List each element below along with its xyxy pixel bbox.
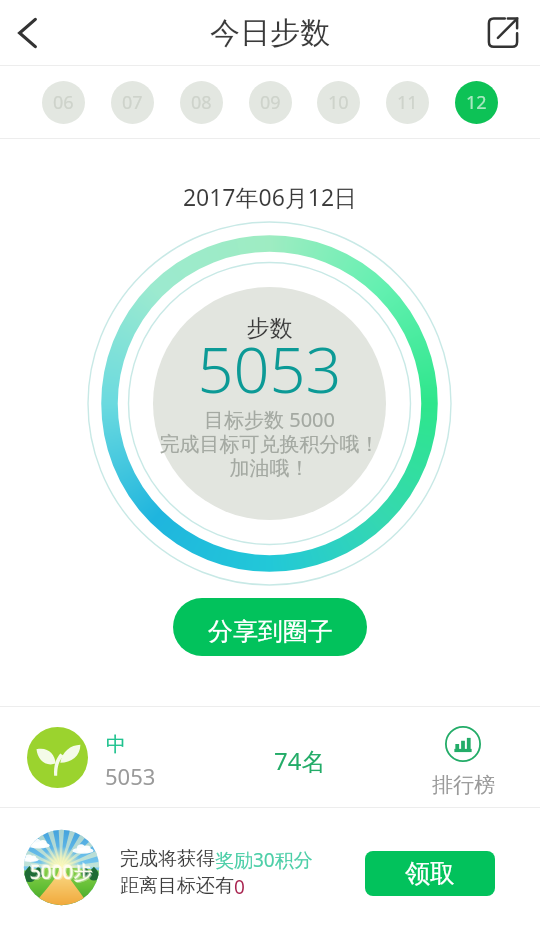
button[interactable]: 09 (249, 81, 292, 124)
staticText: 12 (466, 90, 487, 115)
staticText: 排行榜 (432, 772, 495, 798)
staticText: 5053 (105, 761, 156, 791)
staticText: 完成目标可兑换积分哦！ (86, 432, 453, 457)
button[interactable]: 06 (42, 81, 85, 124)
button[interactable]: 领取 (365, 851, 495, 896)
button[interactable]: 分享到圈子 (173, 598, 367, 656)
staticText: 中 (106, 732, 126, 757)
staticText: 2017年06月12日 (0, 181, 540, 212)
staticText: 06 (53, 90, 74, 115)
button[interactable]: Share (477, 7, 529, 59)
staticText: 74名 (274, 744, 326, 777)
button[interactable]: Level (27, 727, 88, 788)
staticText: 0 (234, 874, 245, 900)
button[interactable]: Back (1, 7, 53, 59)
button[interactable]: 10 (317, 81, 360, 124)
staticText: 11 (397, 90, 418, 115)
staticText: 07 (122, 90, 143, 115)
staticText: 加油哦！ (86, 456, 453, 481)
staticText: 今日步数 (210, 14, 330, 52)
staticText: 09 (260, 90, 281, 115)
button[interactable]: 07 (111, 81, 154, 124)
staticText: 08 (191, 90, 212, 115)
staticText: 距离目标还有 (120, 874, 234, 898)
button[interactable]: 11 (386, 81, 429, 124)
staticText: 5000步 (31, 860, 94, 886)
staticText: 5000步 (29, 858, 92, 884)
staticText: 目标步数 5000 (86, 406, 453, 433)
staticText: 步数 (86, 314, 453, 343)
staticText: 10 (328, 90, 349, 115)
button[interactable]: 排行榜 (428, 726, 498, 798)
staticText: 完成将获得 (120, 847, 215, 871)
staticText: 奖励30积分 (215, 847, 313, 873)
staticText: 5053 (86, 326, 453, 412)
button[interactable]: 12 (455, 81, 498, 124)
staticText: 分享到圈子 (208, 616, 333, 647)
staticText: 领取 (405, 858, 455, 889)
button[interactable]: 08 (180, 81, 223, 124)
staticText: 5000步 (30, 859, 93, 885)
